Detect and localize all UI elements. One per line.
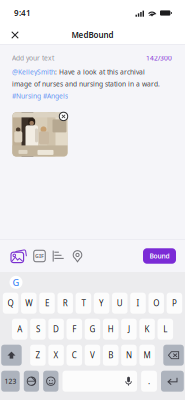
staticText: O — [153, 298, 159, 308]
button[interactable]: . — [141, 371, 157, 392]
button[interactable]: Remove image — [57, 110, 70, 123]
button[interactable]: Emoji — [43, 371, 58, 392]
staticText: G — [89, 324, 95, 334]
button[interactable]: E — [39, 293, 55, 314]
staticText: P — [172, 298, 177, 308]
button[interactable]: C — [67, 345, 82, 366]
button[interactable]: L — [158, 319, 173, 340]
staticText: Q — [8, 298, 14, 308]
button[interactable]: Q — [3, 293, 18, 314]
staticText: E — [45, 298, 49, 308]
staticText: R — [63, 298, 68, 308]
staticText: T — [81, 298, 85, 308]
staticText: L — [163, 324, 167, 334]
button[interactable]: Return — [161, 371, 184, 392]
button[interactable]: Delete — [163, 345, 184, 366]
staticText: I — [136, 298, 139, 308]
button[interactable]: I — [130, 293, 146, 314]
staticText: Add your text — [12, 54, 54, 62]
button[interactable]: Add poll — [49, 247, 68, 265]
staticText: GIF — [35, 252, 44, 260]
button[interactable]: Z — [30, 345, 46, 366]
button[interactable]: P — [167, 293, 182, 314]
staticText: D — [53, 324, 59, 334]
staticText: 142/300 — [146, 54, 172, 62]
button[interactable]: Shift — [1, 345, 22, 366]
staticText: A — [17, 324, 22, 334]
staticText: U — [117, 298, 123, 308]
button[interactable]: 123 — [1, 371, 20, 392]
button[interactable]: Y — [94, 293, 109, 314]
staticText: C — [72, 350, 77, 360]
button[interactable]: J — [121, 319, 137, 340]
staticText: . — [148, 376, 150, 386]
staticText: K — [145, 324, 150, 334]
staticText: H — [108, 324, 114, 334]
button[interactable]: W — [21, 293, 37, 314]
staticText: : Have a look at this archival — [55, 67, 145, 76]
button[interactable]: Bound — [143, 248, 176, 264]
button[interactable]: H — [103, 319, 118, 340]
staticText: B — [108, 350, 113, 360]
staticText: 123 — [4, 377, 16, 386]
button[interactable]: F — [67, 319, 82, 340]
button[interactable]: O — [148, 293, 164, 314]
button[interactable]: G — [85, 319, 100, 340]
button[interactable]: M — [139, 345, 155, 366]
button[interactable]: Google search — [6, 272, 26, 292]
staticText: @KelleySmith — [12, 67, 55, 76]
button[interactable]: T — [76, 293, 91, 314]
staticText: Bound — [149, 252, 169, 260]
button[interactable]: Space — [62, 371, 137, 392]
button[interactable]: R — [57, 293, 73, 314]
staticText: G — [12, 276, 19, 289]
button[interactable]: U — [112, 293, 128, 314]
button[interactable]: Next keyboard — [24, 371, 39, 392]
button[interactable]: A — [12, 319, 27, 340]
staticText: image of nurses and nursing station in a… — [12, 79, 160, 88]
button[interactable]: K — [139, 319, 155, 340]
button[interactable]: Add GIF — [30, 247, 49, 265]
button[interactable]: V — [85, 345, 100, 366]
staticText: Z — [35, 350, 40, 360]
button[interactable]: D — [48, 319, 64, 340]
button[interactable]: X — [48, 345, 64, 366]
button[interactable]: Close — [5, 25, 25, 45]
staticText: J — [128, 324, 130, 334]
staticText: Y — [99, 298, 104, 308]
staticText: N — [126, 350, 132, 360]
button[interactable]: B — [103, 345, 118, 366]
button[interactable]: N — [121, 345, 137, 366]
staticText: #Nursing #Angels — [12, 92, 68, 100]
button[interactable]: S — [30, 319, 46, 340]
staticText: V — [90, 350, 95, 360]
staticText: 9:41 — [14, 8, 31, 18]
staticText: M — [144, 350, 151, 360]
staticText: X — [54, 350, 59, 360]
staticText: W — [25, 298, 32, 308]
staticText: F — [72, 324, 76, 334]
staticText: S — [36, 324, 40, 334]
staticText: MedBound — [71, 30, 113, 40]
button[interactable]: Add photo — [8, 247, 30, 265]
button[interactable]: Add location — [68, 247, 87, 265]
